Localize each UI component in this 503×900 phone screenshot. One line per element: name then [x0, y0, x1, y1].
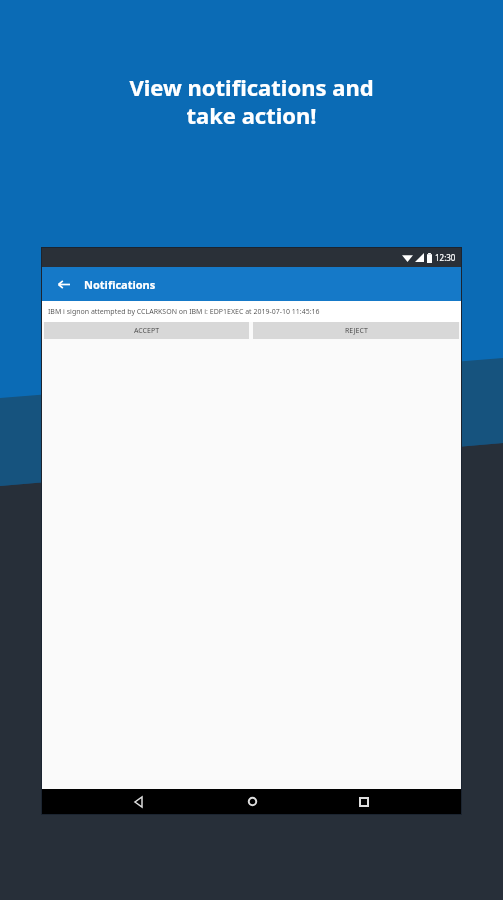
button[interactable]: REJECT	[253, 322, 459, 339]
staticText: IBM i signon attempted by CCLARKSON on I…	[48, 307, 320, 317]
staticText: 12:30	[435, 252, 456, 263]
button[interactable]: Back	[124, 789, 154, 814]
staticText: View notifications and take action!	[0, 72, 503, 130]
button[interactable]: Home	[237, 789, 267, 814]
staticText: ACCEPT	[134, 326, 160, 336]
staticText: REJECT	[345, 326, 368, 336]
button[interactable]: Recent apps	[349, 789, 379, 814]
button[interactable]: ACCEPT	[44, 322, 249, 339]
staticText: Notifications	[84, 277, 156, 292]
button[interactable]: Back	[52, 273, 74, 295]
button[interactable]: IBM i signon attempted by CCLARKSON on I…	[42, 301, 461, 322]
